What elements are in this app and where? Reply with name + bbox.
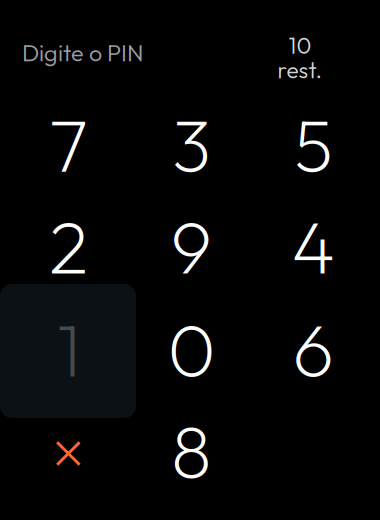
button[interactable]: 4 xyxy=(245,179,380,313)
button[interactable]: 7 xyxy=(1,78,137,212)
staticText: 2 xyxy=(49,200,89,293)
button[interactable]: 6 xyxy=(245,282,380,416)
staticText: 7 xyxy=(49,98,88,191)
button[interactable]: 1 xyxy=(1,282,137,416)
staticText: 3 xyxy=(172,98,211,191)
staticText: 9 xyxy=(170,200,212,293)
button[interactable]: 3 xyxy=(123,78,259,212)
staticText: 5 xyxy=(294,98,333,191)
staticText: Digite o PIN xyxy=(22,38,143,67)
staticText: 6 xyxy=(292,303,334,395)
staticText: 1 xyxy=(57,303,81,395)
staticText: 10 xyxy=(288,31,311,60)
button[interactable]: 9 xyxy=(123,179,259,313)
button[interactable]: 5 xyxy=(245,78,380,212)
staticText: rest. xyxy=(277,56,322,84)
staticText: 8 xyxy=(171,405,212,497)
button[interactable]: 0 xyxy=(123,282,259,416)
button[interactable]: 8 xyxy=(123,384,259,518)
button[interactable]: 2 xyxy=(1,179,137,313)
button[interactable]: Delete xyxy=(0,386,136,520)
staticText: 4 xyxy=(291,200,335,293)
staticText: 0 xyxy=(167,303,215,395)
